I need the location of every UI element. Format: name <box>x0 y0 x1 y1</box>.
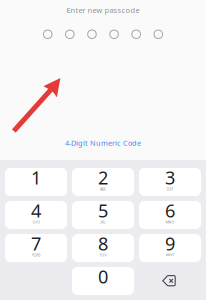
staticText: 2 <box>98 165 108 190</box>
staticText: 4-Digit Numeric Code <box>65 138 141 148</box>
staticText: DEF <box>166 186 173 192</box>
staticText: 5 <box>98 198 108 223</box>
button[interactable]: 1 <box>5 168 67 196</box>
staticText: 8 <box>98 231 108 256</box>
button[interactable]: 5 <box>72 201 134 229</box>
button[interactable]: 9 <box>139 234 201 262</box>
button[interactable]: 8 <box>72 234 134 262</box>
button[interactable]: 2 <box>72 168 134 196</box>
button[interactable]: 7 <box>5 234 67 262</box>
button[interactable]: 6 <box>139 201 201 229</box>
staticText: MNO <box>165 219 174 225</box>
staticText: 9 <box>165 231 175 256</box>
staticText: PQRS <box>31 252 40 258</box>
staticText: 1 <box>31 165 41 190</box>
staticText: 4 <box>31 198 41 223</box>
staticText: 0 <box>98 264 108 289</box>
staticText: WXYZ <box>165 252 174 258</box>
button[interactable]: 3 <box>139 168 201 196</box>
staticText: 7 <box>31 231 41 256</box>
staticText: 3 <box>165 165 175 190</box>
staticText: JKL <box>100 219 105 225</box>
staticText: ABC <box>100 186 106 192</box>
staticText: 6 <box>165 198 175 223</box>
staticText: TUV <box>99 252 106 258</box>
staticText: Enter new passcode <box>66 5 139 15</box>
button[interactable]: Delete <box>139 267 201 295</box>
button[interactable]: 4-Digit Numeric Code <box>0 138 206 148</box>
button[interactable]: 4 <box>5 201 67 229</box>
staticText: GHI <box>32 219 39 225</box>
button[interactable]: 0 <box>72 267 134 295</box>
